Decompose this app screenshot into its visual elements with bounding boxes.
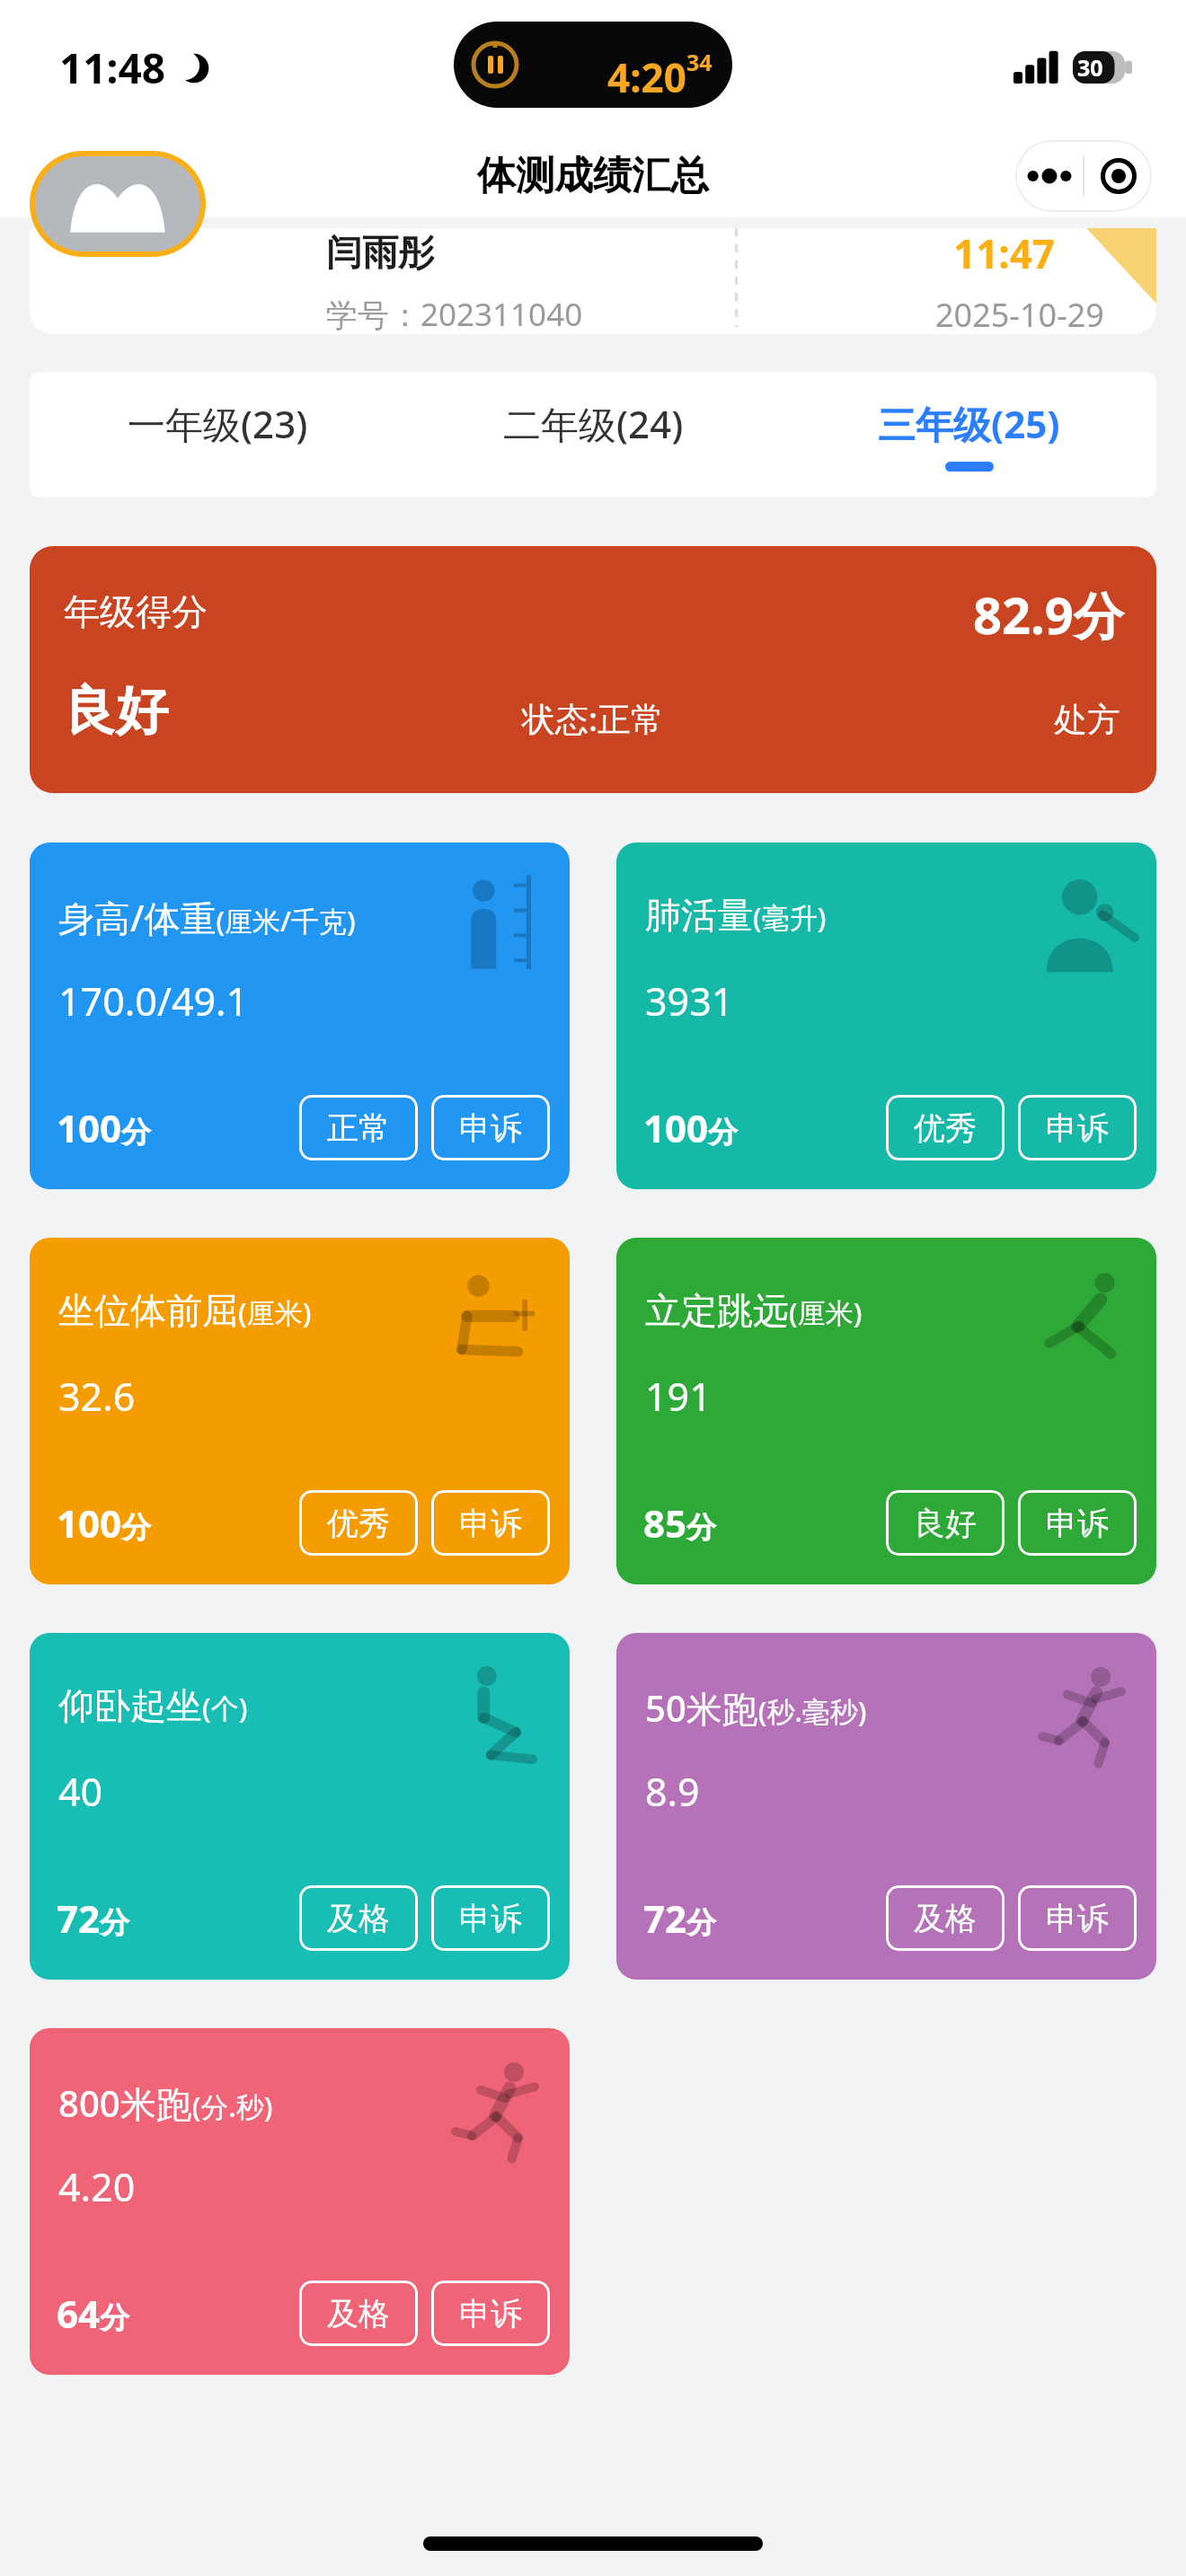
staticText: 34 bbox=[686, 47, 712, 77]
button[interactable]: 申诉 bbox=[431, 2280, 550, 2346]
button[interactable]: 申诉 bbox=[431, 1490, 550, 1556]
staticText: 二年级(24) bbox=[503, 398, 684, 449]
staticText: 40 bbox=[58, 1765, 103, 1818]
staticText: 170.0/49.1 bbox=[58, 975, 249, 1028]
staticText: 及格 bbox=[327, 2294, 390, 2333]
staticText: 82.9分 bbox=[973, 580, 1124, 648]
button[interactable]: 正常 bbox=[299, 1095, 418, 1160]
staticText: 及格 bbox=[914, 1899, 977, 1938]
staticText: 申诉 bbox=[459, 1504, 522, 1543]
staticText: 100分 bbox=[57, 1497, 152, 1548]
staticText: 闫雨彤 bbox=[326, 230, 434, 275]
staticText: 800米跑(分.秒) bbox=[58, 2078, 273, 2128]
staticText: 100分 bbox=[643, 1102, 739, 1153]
staticText: 4:20 bbox=[607, 50, 686, 104]
staticText: 50米跑(秒.毫秒) bbox=[645, 1683, 867, 1733]
staticText: 2025-10-29 bbox=[935, 293, 1104, 334]
staticText: 11:48 bbox=[59, 40, 166, 96]
button[interactable]: 申诉 bbox=[1018, 1095, 1137, 1160]
button[interactable]: 三年级(25) bbox=[781, 372, 1156, 498]
button[interactable]: 身高/体重(厘米/千克) bbox=[30, 842, 570, 1189]
staticText: 64分 bbox=[57, 2288, 130, 2339]
button[interactable]: 二年级(24) bbox=[405, 372, 781, 498]
staticText: 年级得分 bbox=[64, 589, 208, 634]
button[interactable]: Target bbox=[1084, 158, 1152, 194]
staticText: 申诉 bbox=[1046, 1899, 1109, 1938]
staticText: 仰卧起坐(个) bbox=[58, 1683, 248, 1728]
button[interactable]: 优秀 bbox=[299, 1490, 418, 1556]
button[interactable]: 及格 bbox=[299, 2280, 418, 2346]
staticText: 30 bbox=[1077, 52, 1103, 83]
button[interactable]: 申诉 bbox=[1018, 1490, 1137, 1556]
button[interactable]: 申诉 bbox=[431, 1095, 550, 1160]
staticText: 身高/体重(厘米/千克) bbox=[58, 893, 356, 942]
button[interactable]: 申诉 bbox=[1018, 1885, 1137, 1951]
button[interactable]: More bbox=[1015, 166, 1083, 186]
button[interactable]: 闫雨彤 bbox=[30, 228, 1156, 334]
staticText: 72分 bbox=[57, 1892, 130, 1944]
staticText: 191 bbox=[645, 1370, 712, 1423]
staticText: 申诉 bbox=[459, 1899, 522, 1938]
staticText: 体测成绩汇总 bbox=[477, 152, 709, 200]
button[interactable]: 优秀 bbox=[886, 1095, 1005, 1160]
button[interactable]: 仰卧起坐(个) bbox=[30, 1633, 570, 1980]
staticText: 坐位体前屈(厘米) bbox=[58, 1288, 312, 1333]
staticText: 申诉 bbox=[1046, 1108, 1109, 1148]
staticText: 11:47 bbox=[953, 228, 1056, 280]
staticText: 申诉 bbox=[1046, 1504, 1109, 1543]
staticText: 良好 bbox=[64, 678, 168, 744]
button[interactable]: 处方 bbox=[1054, 699, 1120, 741]
staticText: 申诉 bbox=[459, 2294, 522, 2333]
staticText: 32.6 bbox=[58, 1370, 136, 1423]
button[interactable]: 800米跑(分.秒) bbox=[30, 2028, 570, 2375]
staticText: 85分 bbox=[643, 1497, 717, 1548]
staticText: 良好 bbox=[914, 1504, 977, 1543]
staticText: 正常 bbox=[327, 1108, 390, 1148]
staticText: 4.20 bbox=[58, 2160, 136, 2213]
button[interactable]: 申诉 bbox=[431, 1885, 550, 1951]
staticText: 优秀 bbox=[327, 1504, 390, 1543]
staticText: 8.9 bbox=[645, 1765, 700, 1818]
button[interactable]: 年级得分 bbox=[30, 546, 1156, 793]
staticText: 一年级(23) bbox=[128, 398, 308, 449]
button[interactable]: 良好 bbox=[886, 1490, 1005, 1556]
staticText: 三年级(25) bbox=[878, 398, 1060, 449]
staticText: 状态:正常 bbox=[522, 695, 665, 741]
staticText: 72分 bbox=[643, 1892, 717, 1944]
staticText: 学号：202311040 bbox=[326, 293, 583, 334]
staticText: 100分 bbox=[57, 1102, 152, 1153]
staticText: 申诉 bbox=[459, 1108, 522, 1148]
staticText: 肺活量(毫升) bbox=[645, 893, 827, 938]
button[interactable]: 一年级(23) bbox=[30, 372, 405, 498]
button[interactable]: 坐位体前屈(厘米) bbox=[30, 1238, 570, 1584]
staticText: 及格 bbox=[327, 1899, 390, 1938]
button[interactable]: 50米跑(秒.毫秒) bbox=[616, 1633, 1156, 1980]
button[interactable]: 肺活量(毫升) bbox=[616, 842, 1156, 1189]
button[interactable]: 及格 bbox=[299, 1885, 418, 1951]
staticText: 立定跳远(厘米) bbox=[645, 1288, 863, 1333]
button[interactable]: 立定跳远(厘米) bbox=[616, 1238, 1156, 1584]
staticText: 优秀 bbox=[914, 1108, 977, 1148]
staticText: 3931 bbox=[645, 975, 734, 1028]
button[interactable]: 及格 bbox=[886, 1885, 1005, 1951]
